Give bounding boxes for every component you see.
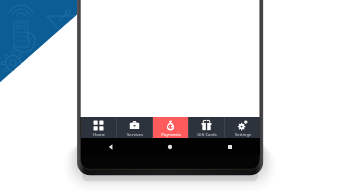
staticText: Gift Cards xyxy=(197,132,217,138)
staticText: Settings xyxy=(235,132,251,138)
button[interactable]: Payments xyxy=(153,117,188,138)
staticText: Payments xyxy=(161,132,181,138)
button[interactable]: Settings xyxy=(225,117,260,138)
button[interactable]: Recent apps xyxy=(200,138,260,155)
button[interactable]: Services xyxy=(117,117,152,138)
staticText: Services xyxy=(127,132,143,138)
button[interactable]: Home xyxy=(140,138,200,155)
button[interactable]: Gift Cards xyxy=(189,117,224,138)
button[interactable]: Back xyxy=(81,138,140,155)
button[interactable]: Home xyxy=(81,117,116,138)
staticText: Home xyxy=(93,132,105,138)
